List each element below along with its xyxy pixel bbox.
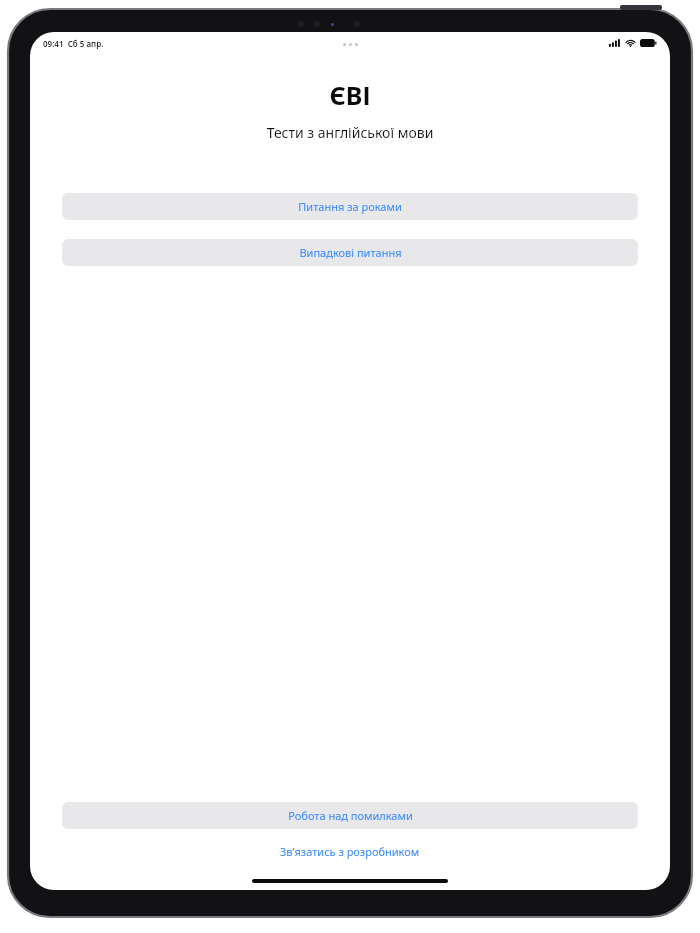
button[interactable]: Робота над помилками <box>62 802 638 829</box>
staticText: Робота над помилками <box>288 808 413 823</box>
staticText: Випадкові питання <box>299 245 402 260</box>
staticText: Питання за роками <box>298 199 402 214</box>
staticText: ЄВІ <box>30 78 670 112</box>
button[interactable]: Випадкові питання <box>62 239 638 266</box>
button[interactable]: Питання за роками <box>62 193 638 220</box>
staticText: Зв’язатись з розробником <box>280 844 420 859</box>
button[interactable]: Multitasking controls <box>338 38 363 51</box>
staticText: Тести з англійської мови <box>30 123 670 142</box>
staticText: 09:41 Сб 5 апр. <box>43 38 104 49</box>
button[interactable]: Зв’язатись з розробником <box>30 837 670 866</box>
